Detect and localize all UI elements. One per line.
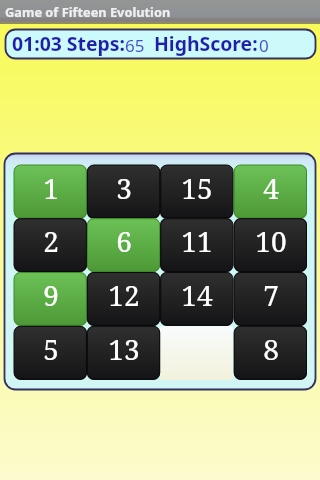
staticText: 11 <box>181 222 213 260</box>
button[interactable]: 8 <box>234 326 307 380</box>
staticText: 1 <box>43 169 59 207</box>
button[interactable]: 2 <box>14 218 87 272</box>
staticText: 4 <box>263 169 279 207</box>
staticText: HighScore: <box>154 30 258 56</box>
staticText: 15 <box>181 169 213 207</box>
button[interactable]: 3 <box>87 165 160 219</box>
staticText: 0 <box>259 34 269 57</box>
button[interactable]: 11 <box>160 218 233 272</box>
button[interactable]: Game of Fifteen Evolution <box>0 0 320 24</box>
button[interactable]: 1 <box>14 165 87 219</box>
button[interactable]: 5 <box>14 326 87 380</box>
staticText: 14 <box>181 276 213 314</box>
staticText: 7 <box>263 276 279 314</box>
staticText: 01:03 Steps: <box>12 30 125 56</box>
staticText: 6 <box>116 222 132 260</box>
staticText: 12 <box>108 276 140 314</box>
staticText: 10 <box>255 222 287 260</box>
staticText: 5 <box>43 330 59 368</box>
other: Puzzle board <box>0 0 320 480</box>
staticText: 13 <box>108 330 140 368</box>
button[interactable] <box>5 29 316 59</box>
button[interactable]: 13 <box>87 326 160 380</box>
button[interactable]: 10 <box>234 218 307 272</box>
staticText: 65 <box>125 34 145 57</box>
staticText: 8 <box>263 330 279 368</box>
button[interactable]: 9 <box>14 272 87 326</box>
button[interactable]: 15 <box>160 165 233 219</box>
button[interactable]: 7 <box>234 272 307 326</box>
button[interactable]: 14 <box>160 272 233 326</box>
button[interactable]: 6 <box>87 218 160 272</box>
staticText: Game of Fifteen Evolution <box>5 3 171 20</box>
button[interactable]: 12 <box>87 272 160 326</box>
staticText: 3 <box>116 169 132 207</box>
button[interactable]: 4 <box>234 165 307 219</box>
staticText: 2 <box>43 222 59 260</box>
staticText: 9 <box>43 276 59 314</box>
